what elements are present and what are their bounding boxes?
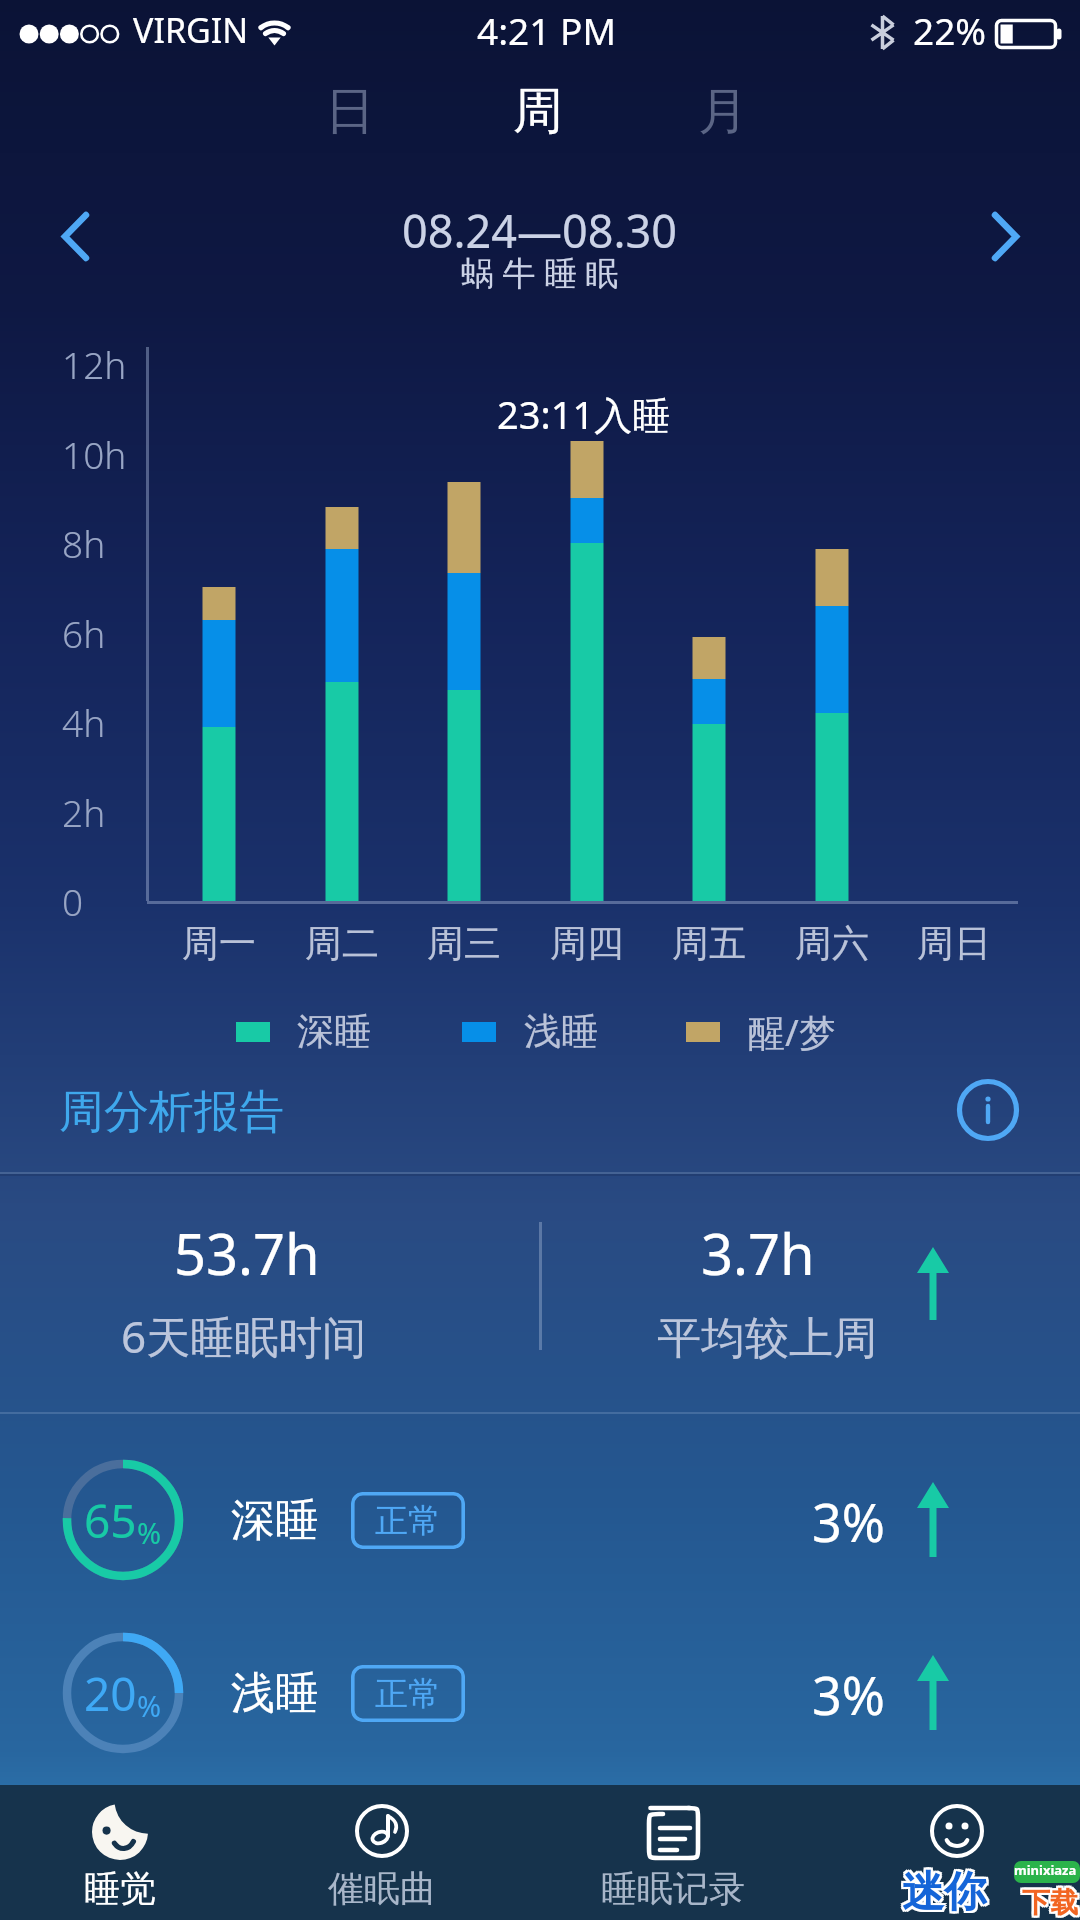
staticText: % <box>137 1686 162 1725</box>
staticText: 浅睡 <box>231 1666 319 1721</box>
staticText: 醒/梦 <box>748 1006 836 1057</box>
button[interactable] <box>538 1785 808 1920</box>
staticText: 迷你 <box>902 1868 986 1920</box>
staticText: 下载 <box>1022 1885 1078 1920</box>
staticText: 深睡 <box>231 1493 319 1548</box>
button[interactable]: 正常 <box>351 1665 465 1722</box>
staticText: 浅睡 <box>524 1008 598 1055</box>
staticText: 周五 <box>672 920 746 967</box>
button[interactable] <box>0 1585 1080 1759</box>
button[interactable]: 周分析报告 <box>44 1076 269 1148</box>
staticText: 日 <box>325 80 375 143</box>
staticText: 3.7h <box>701 1215 815 1277</box>
staticText: 10h <box>62 429 127 479</box>
staticText: 20 <box>84 1662 137 1725</box>
staticText: 下载 <box>1024 1885 1080 1920</box>
staticText: 22% <box>913 5 987 55</box>
button[interactable]: Info <box>940 1062 1036 1158</box>
staticText: 周分析报告 <box>59 1084 284 1141</box>
button[interactable] <box>0 1785 255 1920</box>
staticText: 下载 <box>1024 1883 1080 1918</box>
staticText: 迷你 <box>904 1864 988 1917</box>
staticText: 深睡 <box>297 1008 371 1055</box>
staticText: 蜗 牛 睡 眠 <box>461 250 619 295</box>
staticText: 08.24—08.30 <box>402 200 678 260</box>
staticText: 下载 <box>1022 1887 1078 1920</box>
staticText: 23:11入睡 <box>497 388 671 440</box>
staticText: 下载 <box>1020 1887 1076 1920</box>
staticText: 3% <box>812 1486 885 1554</box>
staticText: 下载 <box>1024 1887 1080 1920</box>
button[interactable] <box>47 1173 447 1413</box>
staticText: 周三 <box>427 920 501 967</box>
staticText: % <box>137 1513 162 1552</box>
staticText: 迷你 <box>904 1868 988 1920</box>
button[interactable]: 正常 <box>351 1492 465 1549</box>
staticText: 迷你 <box>902 1866 986 1919</box>
staticText: minixiazai <box>1014 1861 1080 1883</box>
staticText: 周日 <box>917 920 991 967</box>
staticText: 2h <box>62 787 106 837</box>
staticText: 周六 <box>795 920 869 967</box>
staticText: 4:21 PM <box>477 5 616 55</box>
button[interactable]: 醒/梦 <box>670 995 852 1067</box>
staticText: 12h <box>62 339 127 389</box>
staticText: 下载 <box>1020 1885 1076 1920</box>
staticText: 月 <box>698 80 748 143</box>
staticText: 0 <box>62 876 84 926</box>
staticText: 睡眠记录 <box>601 1866 745 1911</box>
staticText: 65 <box>84 1489 137 1552</box>
button[interactable]: 月 <box>675 72 771 150</box>
staticText: 6天睡眠时间 <box>121 1306 367 1362</box>
staticText: 平均较上周 <box>657 1311 877 1366</box>
staticText: 迷你 <box>900 1868 984 1920</box>
staticText: 迷你 <box>904 1866 988 1919</box>
staticText: 迷你 <box>900 1866 984 1919</box>
staticText: 迷你 <box>900 1864 984 1917</box>
button[interactable]: Previous week <box>20 182 130 290</box>
button[interactable]: 周 <box>490 72 586 150</box>
staticText: 周二 <box>305 920 379 967</box>
staticText: 下载 <box>1020 1883 1076 1918</box>
button[interactable]: Next week <box>950 182 1060 290</box>
staticText: VIRGIN <box>133 7 249 53</box>
staticText: 正常 <box>375 1500 441 1542</box>
staticText: 正常 <box>375 1673 441 1715</box>
staticText: 周四 <box>550 920 624 967</box>
button[interactable]: 日 <box>302 72 398 150</box>
staticText: 4h <box>62 697 106 747</box>
button[interactable] <box>247 1785 517 1920</box>
button[interactable] <box>567 1173 967 1413</box>
staticText: 睡觉 <box>84 1866 156 1911</box>
staticText: 6h <box>62 608 106 658</box>
staticText: 3% <box>812 1659 885 1727</box>
staticText: 8h <box>62 518 106 568</box>
button[interactable]: 深睡 <box>220 995 387 1067</box>
button[interactable]: 浅睡 <box>446 995 614 1067</box>
staticText: 53.7h <box>174 1215 320 1277</box>
staticText: 周一 <box>182 920 256 967</box>
button[interactable] <box>0 1412 1080 1586</box>
staticText: 下载 <box>1022 1883 1078 1918</box>
staticText: 周 <box>513 80 563 143</box>
button[interactable] <box>821 1785 1080 1920</box>
staticText: 催眠曲 <box>328 1866 436 1911</box>
staticText: 迷你 <box>902 1864 986 1917</box>
